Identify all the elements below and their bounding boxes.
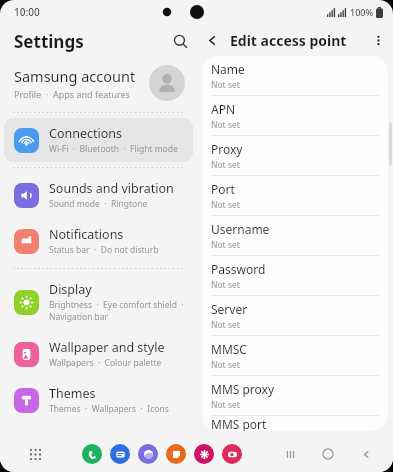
staticText: Not set (211, 159, 240, 171)
button[interactable]: note (166, 444, 186, 464)
staticText: Themes (49, 385, 96, 402)
button[interactable]: msg (110, 444, 130, 464)
staticText: Not set (211, 79, 240, 91)
staticText: Navigation bar (49, 311, 109, 323)
staticText: MMSC (211, 341, 247, 357)
staticText: Settings (14, 30, 84, 53)
staticText: 100% (350, 6, 374, 18)
staticText: Profile · Apps and features (14, 88, 130, 100)
button[interactable]: More options (363, 25, 393, 55)
button[interactable]: Wallpaper and style (4, 332, 193, 376)
staticText: Proxy (211, 141, 243, 157)
staticText: Not set (211, 279, 240, 291)
button[interactable]: gal (194, 444, 214, 464)
button[interactable]: MMS port (202, 416, 388, 431)
button[interactable]: Back (197, 25, 227, 55)
button[interactable]: cam (222, 444, 242, 464)
button[interactable]: Samsung account (0, 58, 197, 108)
staticText: Connections (49, 125, 122, 142)
button[interactable]: MMS proxy (202, 376, 388, 415)
staticText: Name (211, 61, 245, 77)
staticText: Username (211, 221, 270, 237)
button[interactable]: Port (202, 176, 388, 215)
button[interactable]: Sounds and vibration (4, 173, 193, 217)
staticText: Notifications (49, 226, 124, 243)
staticText: Sound mode · Ringtone (49, 198, 148, 210)
button[interactable]: Notifications (4, 219, 193, 263)
staticText: Not set (211, 359, 240, 371)
button[interactable]: Back (353, 441, 379, 467)
button[interactable]: MMSC (202, 336, 388, 375)
staticText: Password (211, 261, 266, 277)
staticText: Status bar · Do not disturb (49, 244, 159, 256)
staticText: Sounds and vibration (49, 180, 174, 197)
staticText: Themes · Wallpapers · Icons (49, 403, 169, 415)
staticText: Not set (211, 119, 240, 131)
staticText: APN (211, 101, 236, 117)
button[interactable]: Themes (4, 378, 193, 422)
staticText: 10:00 (14, 5, 40, 19)
button[interactable]: Recents (277, 441, 303, 467)
staticText: MMS proxy (211, 381, 275, 397)
button[interactable]: phone (82, 444, 102, 464)
staticText: Brightness · Eye comfort shield · (49, 299, 184, 311)
staticText: Not set (211, 319, 240, 331)
staticText: Server (211, 301, 248, 317)
button[interactable]: Proxy (202, 136, 388, 175)
staticText: Display (49, 281, 92, 298)
button[interactable]: Search (163, 24, 197, 58)
staticText: Edit access point (230, 31, 347, 50)
staticText: Not set (211, 239, 240, 251)
button[interactable]: Connections (4, 118, 193, 162)
button[interactable]: APN (202, 96, 388, 135)
staticText: Samsung account (14, 66, 136, 86)
button[interactable]: Username (202, 216, 388, 255)
button[interactable]: Name (202, 56, 388, 95)
staticText: Wallpapers · Colour palette (49, 357, 162, 369)
button[interactable]: Server (202, 296, 388, 335)
button[interactable]: Apps (22, 441, 48, 467)
staticText: MMS port (211, 416, 267, 431)
staticText: Wi-Fi · Bluetooth · Flight mode (49, 143, 178, 155)
button[interactable]: Password (202, 256, 388, 295)
button[interactable]: Display (4, 274, 193, 330)
staticText: Not set (211, 199, 240, 211)
staticText: Not set (211, 399, 240, 411)
staticText: Port (211, 181, 235, 197)
button[interactable]: net (138, 444, 158, 464)
button[interactable]: Home (315, 441, 341, 467)
staticText: Wallpaper and style (49, 339, 165, 356)
